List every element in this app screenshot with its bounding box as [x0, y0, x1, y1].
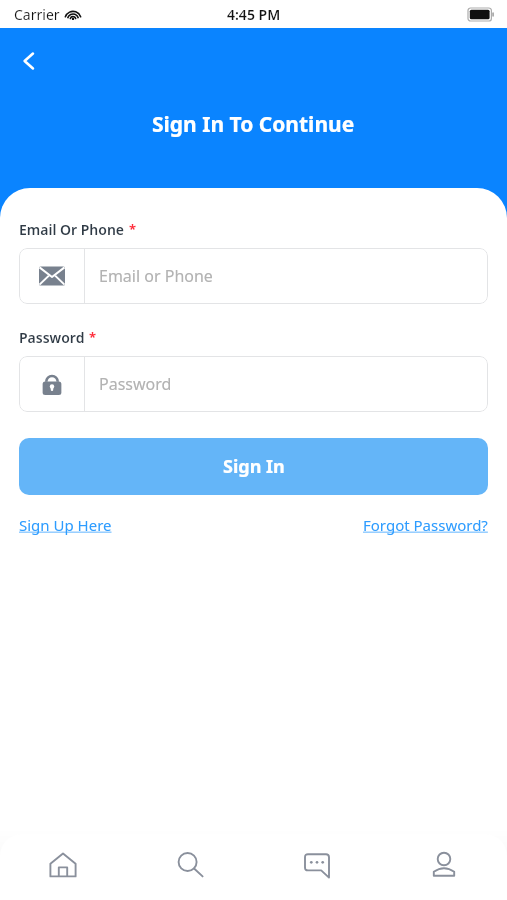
staticText: Sign In — [223, 454, 285, 479]
button[interactable]: Messages — [253, 834, 380, 900]
staticText: Password — [99, 373, 172, 395]
button[interactable]: Search — [126, 834, 253, 900]
button[interactable]: Email or Phone — [19, 248, 488, 304]
button[interactable]: Password — [19, 356, 488, 412]
staticText: * — [89, 328, 97, 346]
staticText: Forgot Password? — [363, 515, 488, 535]
staticText: * — [129, 220, 137, 238]
button[interactable]: Forgot Password? — [363, 515, 488, 535]
staticText: Sign Up Here — [19, 515, 112, 535]
button[interactable]: Home — [0, 834, 126, 900]
staticText: Sign In To Continue — [152, 110, 355, 139]
staticText: Email Or Phone — [19, 220, 125, 239]
button[interactable]: Back — [6, 38, 52, 84]
staticText: Carrier — [14, 5, 60, 24]
staticText: 4:45 PM — [227, 5, 281, 24]
button[interactable]: Sign Up Here — [19, 515, 112, 535]
staticText: Password — [19, 328, 85, 347]
button[interactable]: Profile — [380, 834, 507, 900]
button[interactable]: Sign In — [19, 438, 488, 495]
staticText: Email or Phone — [99, 265, 213, 287]
